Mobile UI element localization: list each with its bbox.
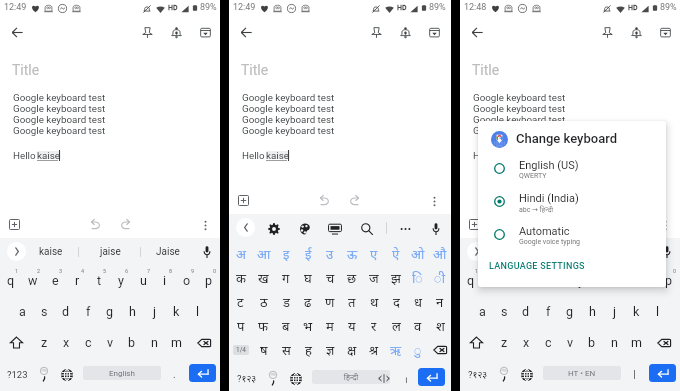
button[interactable]: h bbox=[581, 296, 603, 327]
button[interactable]: क bbox=[229, 266, 252, 290]
button[interactable]: ?१२३ bbox=[231, 366, 262, 391]
button[interactable]: f bbox=[537, 296, 559, 327]
button[interactable]: ई bbox=[297, 242, 319, 266]
button[interactable]: ब bbox=[275, 314, 297, 338]
button[interactable]: ड bbox=[275, 290, 297, 314]
button[interactable]: n bbox=[603, 327, 625, 358]
button[interactable]: Search bbox=[355, 217, 378, 240]
button[interactable]: Change language bbox=[284, 366, 308, 391]
button[interactable]: . bbox=[164, 362, 184, 387]
button[interactable]: b bbox=[121, 327, 143, 358]
button[interactable]: Archive bbox=[193, 20, 217, 44]
button[interactable]: 5 bbox=[548, 265, 570, 296]
button[interactable]: ल bbox=[385, 314, 407, 338]
button[interactable]: औ bbox=[429, 242, 451, 266]
button[interactable]: Archive bbox=[422, 20, 446, 44]
button[interactable]: 8 bbox=[614, 265, 636, 296]
button[interactable]: Themes bbox=[293, 217, 316, 240]
button[interactable]: 7 bbox=[132, 265, 154, 296]
button[interactable]: h bbox=[121, 296, 143, 327]
button[interactable]: च bbox=[319, 266, 341, 290]
button[interactable]: हिन्दी bbox=[312, 370, 390, 384]
button[interactable]: 4 bbox=[526, 265, 548, 296]
button[interactable]: LANGUAGE SETTINGS bbox=[478, 259, 666, 281]
button[interactable]: ी bbox=[429, 266, 451, 290]
button[interactable]: s bbox=[33, 296, 55, 327]
button[interactable]: Move cursor bbox=[375, 366, 393, 391]
button[interactable]: 5 bbox=[88, 265, 110, 296]
button[interactable]: English bbox=[83, 366, 161, 380]
button[interactable]: j bbox=[603, 296, 625, 327]
button[interactable]: 2 bbox=[482, 265, 504, 296]
button[interactable]: Add bbox=[2, 212, 26, 236]
button[interactable]: Comma bbox=[34, 362, 54, 387]
button[interactable]: m bbox=[165, 327, 187, 358]
button[interactable]: ज्ञ bbox=[319, 338, 341, 362]
button[interactable]: । bbox=[398, 366, 414, 391]
button[interactable] bbox=[624, 362, 644, 387]
button[interactable]: c bbox=[77, 327, 99, 358]
button[interactable]: Archive bbox=[653, 20, 677, 44]
button[interactable]: Reminder bbox=[164, 20, 188, 44]
button[interactable]: Shift bbox=[0, 327, 33, 358]
button[interactable]: Comma bbox=[263, 366, 283, 391]
button[interactable]: 1 bbox=[460, 265, 482, 296]
button[interactable]: ?123 bbox=[2, 362, 33, 387]
button[interactable]: ऊ bbox=[341, 242, 363, 266]
button[interactable]: Jaise bbox=[145, 238, 191, 265]
button[interactable]: 9 bbox=[636, 265, 658, 296]
button[interactable]: इ bbox=[275, 242, 297, 266]
button[interactable]: 8 bbox=[154, 265, 176, 296]
button[interactable]: Undo bbox=[544, 212, 568, 236]
button[interactable]: द bbox=[385, 290, 407, 314]
button[interactable]: आ bbox=[252, 242, 275, 266]
button[interactable]: क्ष bbox=[341, 338, 363, 362]
button[interactable]: Settings bbox=[262, 217, 285, 240]
button[interactable]: g bbox=[559, 296, 581, 327]
button[interactable]: 1/4 bbox=[229, 338, 252, 362]
button[interactable]: ए bbox=[363, 242, 385, 266]
button[interactable]: k bbox=[165, 296, 187, 327]
button[interactable]: 4 bbox=[66, 265, 88, 296]
button[interactable]: Back bbox=[465, 20, 489, 44]
button[interactable]: फ bbox=[252, 314, 275, 338]
button[interactable]: 3 bbox=[504, 265, 526, 296]
button[interactable]: Enter bbox=[418, 368, 445, 386]
button[interactable]: व bbox=[407, 314, 429, 338]
button[interactable]: Backspace bbox=[429, 338, 451, 362]
button[interactable]: ष bbox=[252, 338, 275, 362]
button[interactable]: भ bbox=[297, 314, 319, 338]
button[interactable]: v bbox=[99, 327, 121, 358]
button[interactable]: Comma bbox=[494, 362, 514, 387]
button[interactable]: HT • EN bbox=[543, 366, 621, 380]
button[interactable]: Expand suggestions bbox=[7, 242, 26, 261]
button[interactable]: Change language bbox=[515, 362, 539, 387]
button[interactable]: English (US) bbox=[478, 158, 666, 191]
button[interactable]: a bbox=[11, 296, 33, 327]
button[interactable]: झ bbox=[385, 266, 407, 290]
button[interactable]: ण bbox=[319, 290, 341, 314]
button[interactable]: Back bbox=[236, 218, 255, 237]
button[interactable]: More bbox=[394, 217, 417, 240]
button[interactable]: स bbox=[275, 338, 297, 362]
button[interactable]: 3 bbox=[44, 265, 66, 296]
button[interactable]: Undo bbox=[84, 212, 108, 236]
button[interactable]: ऐ bbox=[385, 242, 407, 266]
button[interactable]: c bbox=[537, 327, 559, 358]
button[interactable]: d bbox=[55, 296, 77, 327]
button[interactable]: Voice input bbox=[656, 241, 677, 262]
button[interactable]: Automatic bbox=[478, 224, 666, 257]
button[interactable]: Reminder bbox=[624, 20, 648, 44]
button[interactable]: Change language bbox=[55, 362, 79, 387]
button[interactable]: ऋ bbox=[385, 338, 407, 362]
button[interactable]: थ bbox=[363, 290, 385, 314]
button[interactable]: न bbox=[429, 290, 451, 314]
button[interactable]: म bbox=[319, 314, 341, 338]
button[interactable]: jaise bbox=[83, 238, 138, 265]
button[interactable]: z bbox=[493, 327, 515, 358]
button[interactable]: 9 bbox=[176, 265, 198, 296]
button[interactable]: Undo bbox=[313, 188, 337, 212]
button[interactable]: 0 bbox=[658, 265, 680, 296]
button[interactable]: l bbox=[647, 296, 669, 327]
button[interactable]: Back bbox=[5, 20, 29, 44]
